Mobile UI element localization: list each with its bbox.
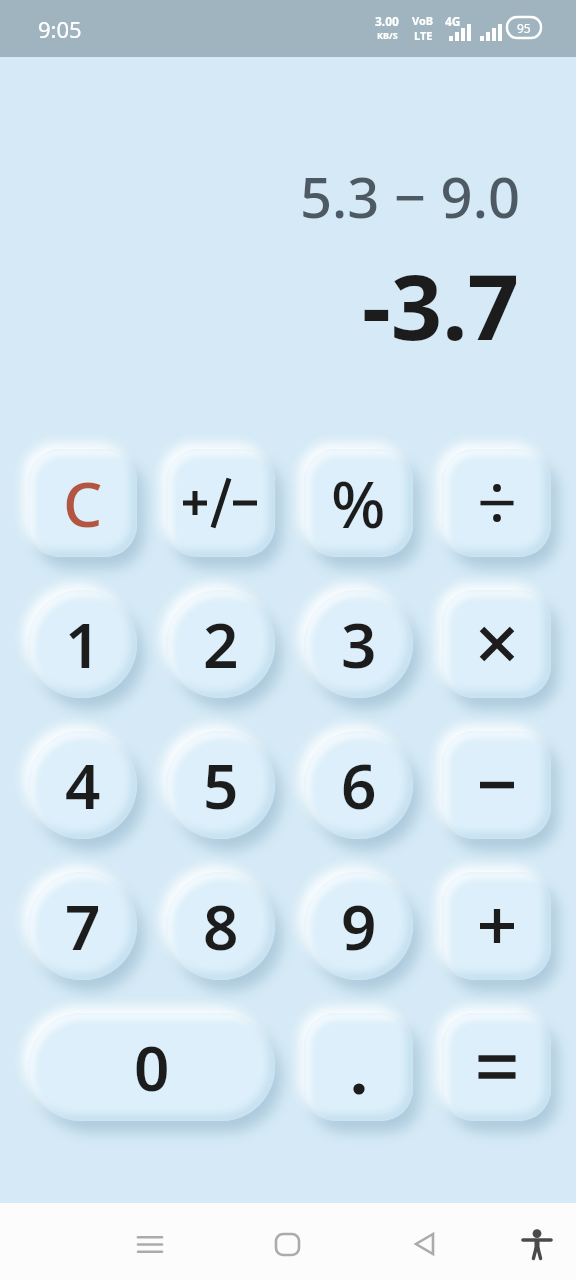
staticText: 4G	[445, 13, 461, 29]
button[interactable]: 1	[28, 590, 137, 698]
button[interactable]	[442, 731, 551, 839]
button[interactable]	[128, 1222, 172, 1266]
staticText: 6	[341, 743, 377, 827]
button[interactable]: 5	[166, 731, 275, 839]
button[interactable]: 8	[166, 872, 275, 980]
button[interactable]	[402, 1222, 446, 1266]
button[interactable]	[442, 449, 551, 557]
staticText: 1	[65, 602, 101, 686]
button[interactable]: 9	[304, 872, 413, 980]
staticText: 0	[134, 1025, 170, 1109]
staticText: 95	[517, 20, 531, 36]
button[interactable]	[265, 1222, 309, 1266]
staticText: KB/S	[377, 29, 398, 41]
staticText: 5	[203, 743, 239, 827]
staticText: 7	[65, 884, 101, 968]
button[interactable]: 3	[304, 590, 413, 698]
staticText: 4	[65, 743, 101, 827]
button[interactable]: %	[304, 449, 413, 557]
button[interactable]	[442, 590, 551, 698]
staticText: 9	[341, 884, 377, 968]
staticText: LTE	[414, 28, 433, 43]
staticText: 5.3 − 9.0	[300, 158, 520, 234]
staticText: 2	[203, 602, 239, 686]
button[interactable]: 4	[28, 731, 137, 839]
button[interactable]: 2	[166, 590, 275, 698]
staticText: -3.7	[362, 244, 520, 367]
staticText: 3	[341, 602, 377, 686]
button[interactable]: 0	[28, 1013, 275, 1121]
staticText: 3.00	[375, 13, 399, 29]
staticText: C	[63, 461, 103, 545]
staticText: VoB	[412, 13, 434, 28]
staticText: 9:05	[38, 14, 82, 44]
button[interactable]	[515, 1222, 559, 1266]
staticText: 8	[203, 884, 239, 968]
button[interactable]: 6	[304, 731, 413, 839]
button[interactable]: 7	[28, 872, 137, 980]
button[interactable]	[442, 872, 551, 980]
button[interactable]	[304, 1013, 413, 1121]
staticText: %	[331, 460, 386, 547]
button[interactable]	[442, 1013, 551, 1121]
button[interactable]	[166, 449, 275, 557]
button[interactable]: C	[28, 449, 137, 557]
